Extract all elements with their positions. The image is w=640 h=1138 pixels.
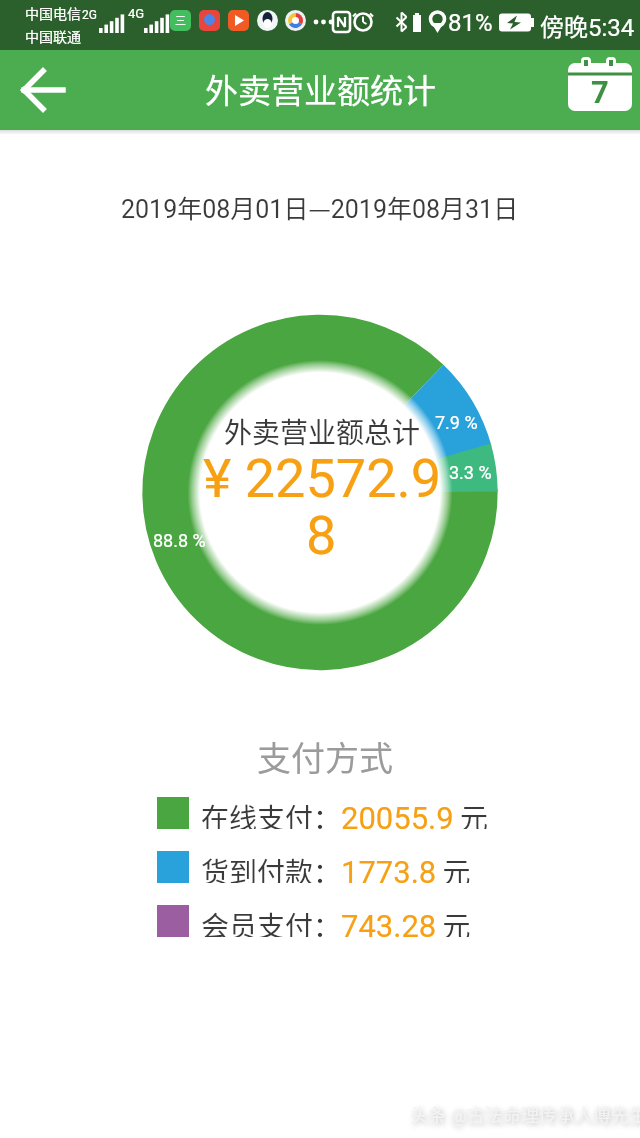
staticText: 3.3 % <box>449 462 492 483</box>
button[interactable]: 货到付款：1773.8 元 <box>157 851 471 883</box>
staticText: 支付方式 <box>257 732 393 781</box>
staticText: 货到付款：1773.8 元 <box>201 851 471 883</box>
staticText: 2019年08月01日—2019年08月31日 <box>121 189 519 225</box>
staticText: 88.8 % <box>153 530 206 551</box>
staticText: 外卖营业额总计 <box>224 411 421 452</box>
staticText: 7.9 % <box>435 412 478 433</box>
staticText: 傍晚5:34 <box>540 8 635 43</box>
staticText: 中国联通 <box>25 26 81 46</box>
staticText: 2G <box>82 8 97 22</box>
staticText: 在线支付：20055.9 元 <box>201 797 488 829</box>
staticText: 7 <box>591 74 609 110</box>
button[interactable] <box>0 50 88 130</box>
button[interactable]: 在线支付：20055.9 元 <box>157 797 488 829</box>
staticText: 4G <box>128 6 145 21</box>
button[interactable]: 会员支付：743.28 元 <box>157 905 471 937</box>
staticText: ¥ 22572.9 <box>203 447 442 510</box>
button[interactable]: 7 <box>552 50 640 130</box>
staticText: 81% <box>448 9 493 37</box>
staticText: 头条 @古法命理传承人傅先生 <box>410 1101 640 1127</box>
staticText: 中国电信 <box>25 3 81 23</box>
staticText: 会员支付：743.28 元 <box>201 905 471 937</box>
staticText: 外卖营业额统计 <box>205 65 436 113</box>
staticText: 三 <box>175 12 186 28</box>
staticText: 8 <box>306 504 337 567</box>
